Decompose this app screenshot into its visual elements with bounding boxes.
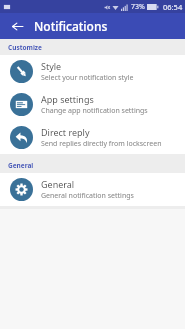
staticText: Customize	[8, 43, 42, 52]
staticText: 06:54	[163, 2, 183, 12]
button[interactable]: Style	[0, 55, 185, 88]
staticText: General notification settings	[41, 191, 134, 201]
staticText: General	[8, 161, 34, 170]
staticText: Change app notification settings	[41, 106, 148, 116]
button[interactable]: App settings	[0, 88, 185, 121]
staticText: Send replies directly from lockscreen	[41, 139, 162, 149]
staticText: Select your notification style	[41, 73, 134, 83]
staticText: Notifications	[34, 18, 108, 34]
staticText: Style	[41, 60, 62, 72]
button[interactable]: Back	[0, 13, 34, 39]
staticText: App settings	[41, 93, 94, 105]
button[interactable]: Direct reply	[0, 121, 185, 154]
staticText: 73%	[131, 2, 145, 12]
staticText: Direct reply	[41, 126, 90, 138]
staticText: General	[41, 178, 75, 190]
button[interactable]: General	[0, 173, 185, 206]
